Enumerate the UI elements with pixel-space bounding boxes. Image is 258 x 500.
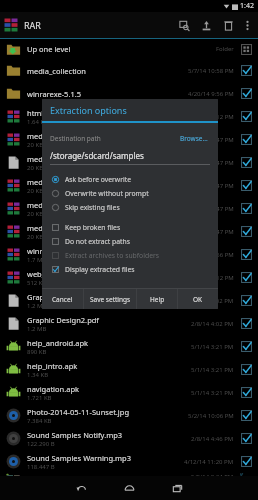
staticText: media_collection5.rar — [27, 223, 103, 233]
button[interactable]: Do not extract paths — [42, 234, 218, 248]
button[interactable]: Photo-2014-05-11-Sunset.jpg — [0, 404, 258, 427]
staticText: 4/11/14 5:47 PM — [188, 159, 234, 167]
staticText: 1.34 KB — [27, 371, 49, 379]
staticText: help_intro.apk — [27, 361, 78, 371]
staticText: 4/11/14 5:47 PM — [188, 182, 234, 190]
button[interactable]: Select Sound Samples Notify.mp3 — [240, 432, 253, 445]
staticText: Display extracted files — [65, 265, 135, 274]
button[interactable]: Home — [105, 476, 153, 500]
staticText: navigation.apk — [27, 384, 80, 394]
button[interactable]: Sound Samples Warning.mp3 — [0, 450, 258, 473]
button[interactable]: Browse... — [178, 132, 210, 145]
button[interactable]: Select Sound Samples Warning.mp3 — [240, 455, 253, 468]
staticText: 1.7 MB — [27, 256, 47, 264]
staticText: Overwrite without prompt — [65, 189, 149, 198]
button[interactable]: Help — [137, 289, 177, 309]
button[interactable]: Select web_directory.rar — [240, 271, 253, 284]
button[interactable]: Overwrite without prompt — [42, 186, 218, 200]
button[interactable]: /storage/sdcard/samples — [50, 150, 210, 165]
staticText: 4/12/14 11:20 PM — [184, 458, 234, 466]
button[interactable]: Back — [57, 476, 105, 500]
button[interactable]: Select help_android.apk — [240, 340, 253, 353]
button[interactable]: html_backup.rar — [0, 105, 258, 128]
button[interactable]: OK — [178, 289, 218, 309]
staticText: 3/12/14 7:12 PM — [188, 113, 234, 121]
button[interactable]: Up one level — [0, 39, 258, 59]
staticText: 118.447 B — [27, 463, 55, 471]
staticText: 5/1/14 3:21 PM — [191, 389, 234, 397]
button[interactable]: Select media_collection1.rar — [240, 133, 253, 146]
button[interactable]: Select html_backup.rar — [240, 110, 253, 123]
button[interactable]: Select media_collection5.rar — [240, 225, 253, 238]
button[interactable]: Recent apps — [153, 476, 201, 500]
button[interactable]: Select media_collection — [240, 64, 253, 77]
button[interactable]: WhatsNew-Version-5.10.txt — [0, 473, 258, 476]
staticText: help_android.apk — [27, 338, 89, 348]
staticText: 890 KB — [27, 348, 47, 356]
button[interactable]: Graphic Design.pdf — [0, 289, 258, 312]
staticText: 7.384 KB — [27, 417, 52, 425]
button[interactable]: Select WhatsNew-Version-5.10.txt — [240, 473, 253, 476]
button[interactable]: Select Graphic Design2.pdf — [240, 317, 253, 330]
button[interactable]: media_collection5.rar — [0, 220, 258, 243]
button[interactable]: media_collection3.rar — [0, 174, 258, 197]
button[interactable]: Cancel — [42, 289, 83, 309]
button[interactable]: media_collection — [0, 59, 258, 82]
staticText: Do not extract paths — [65, 237, 130, 246]
button[interactable]: help_intro.apk — [0, 358, 258, 381]
staticText: 5/5/14 8:34 PM — [191, 473, 234, 476]
button[interactable]: winrarexe-5.1.5 — [0, 82, 258, 105]
staticText: 122.290 B — [27, 440, 55, 448]
button[interactable]: Skip existing files — [42, 200, 218, 214]
staticText: Save settings — [90, 295, 131, 304]
staticText: 5/1/14 3:21 PM — [191, 343, 234, 351]
staticText: Skip existing files — [65, 203, 120, 212]
button[interactable]: Display extracted files — [42, 262, 218, 276]
staticText: winrarexe-5.1.5 — [27, 89, 81, 99]
staticText: Keep broken files — [65, 223, 121, 232]
staticText: 4/11/14 5:47 PM — [188, 205, 234, 213]
staticText: 5/7/14 10:58 PM — [188, 67, 234, 75]
button[interactable]: Save settings — [84, 289, 136, 309]
button[interactable]: Select Up one level — [240, 43, 253, 56]
button[interactable]: Select navigation.apk — [240, 386, 253, 399]
staticText: 20 KB — [27, 141, 44, 149]
button[interactable]: Select Graphic Design.pdf — [240, 294, 253, 307]
button[interactable]: Select media_collection3.rar — [240, 179, 253, 192]
button[interactable]: Graphic Design2.pdf — [0, 312, 258, 335]
button[interactable]: Select winrarexe-5.1.5.rar — [240, 248, 253, 261]
staticText: Folder — [216, 45, 234, 53]
button[interactable]: Delete — [217, 12, 239, 38]
button[interactable]: Select media_collection4.rar — [240, 202, 253, 215]
button: Extract archives to subfolders — [42, 248, 218, 262]
button[interactable]: Extract — [195, 12, 217, 38]
button[interactable]: Keep broken files — [42, 220, 218, 234]
staticText: 2/8/14 4:02 PM — [191, 297, 234, 305]
staticText: Help — [150, 295, 165, 304]
button[interactable]: More options — [239, 12, 255, 38]
staticText: media_collection3.rar — [27, 177, 103, 187]
button[interactable]: Select winrarexe-5.1.5 — [240, 87, 253, 100]
button[interactable]: media_collection2.rar — [0, 151, 258, 174]
staticText: 20 KB — [27, 187, 44, 195]
staticText: winrarexe-5.1.5.rar — [27, 246, 94, 256]
button[interactable]: Select Photo-2014-05-11-Sunset.jpg — [240, 409, 253, 422]
button[interactable]: navigation.apk — [0, 381, 258, 404]
button[interactable]: Ask before overwrite — [42, 172, 218, 186]
staticText: RAR — [24, 19, 41, 31]
button[interactable]: Search — [173, 12, 195, 38]
staticText: 4/11/14 5:47 PM — [188, 136, 234, 144]
button[interactable]: winrarexe-5.1.5.rar — [0, 243, 258, 266]
staticText: /storage/sdcard/samples — [50, 150, 144, 161]
button[interactable]: RAR app icon — [4, 18, 18, 32]
button[interactable]: Select media_collection2.rar — [240, 156, 253, 169]
button[interactable]: media_collection4.rar — [0, 197, 258, 220]
button[interactable]: Select help_intro.apk — [240, 363, 253, 376]
button[interactable]: Sound Samples Notify.mp3 — [0, 427, 258, 450]
button[interactable]: media_collection1.rar — [0, 128, 258, 151]
staticText: 512 KB — [27, 279, 47, 287]
button[interactable]: help_android.apk — [0, 335, 258, 358]
button[interactable]: web_directory.rar — [0, 266, 258, 289]
staticText: 3/12/14 7:12 PM — [188, 274, 234, 282]
